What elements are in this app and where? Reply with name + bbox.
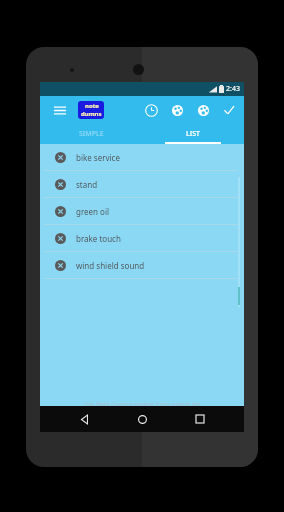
button[interactable]: Time — [138, 97, 164, 123]
staticText: LIST — [186, 129, 200, 139]
staticText: green oil — [76, 206, 110, 217]
button[interactable]: Delete bike service — [50, 147, 70, 167]
button[interactable]: Text color — [164, 97, 190, 123]
button[interactable]: Back — [72, 406, 98, 432]
button[interactable]: Delete green oil — [50, 201, 70, 221]
button[interactable]: Delete wind shield sound — [50, 255, 70, 275]
button[interactable]: SIMPLE — [40, 124, 142, 144]
button[interactable]: Delete brake touch — [50, 228, 70, 248]
staticText: SIMPLE — [79, 129, 104, 139]
staticText: stand — [76, 179, 98, 190]
staticText: bike service — [76, 152, 120, 163]
staticText: note — [85, 102, 99, 110]
staticText: dumns — [81, 110, 102, 118]
staticText: brake touch — [76, 233, 121, 244]
button[interactable]: Delete bike service — [40, 144, 244, 171]
button[interactable]: Recents — [187, 406, 213, 432]
staticText: Get Note Dummy widget from widget list — [84, 400, 200, 408]
button[interactable]: Background color — [190, 97, 216, 123]
staticText: wind shield sound — [76, 260, 145, 271]
button[interactable]: Done — [216, 97, 242, 123]
staticText: 2:43 — [226, 84, 240, 94]
button[interactable]: Delete stand — [40, 171, 244, 198]
button[interactable]: note — [78, 101, 104, 119]
button[interactable]: Home — [129, 406, 155, 432]
button[interactable]: Delete stand — [50, 174, 70, 194]
button[interactable]: Menu — [46, 96, 74, 124]
button[interactable]: Delete wind shield sound — [40, 252, 244, 279]
button[interactable]: LIST — [142, 124, 244, 144]
button[interactable]: Delete green oil — [40, 198, 244, 225]
button[interactable]: Delete brake touch — [40, 225, 244, 252]
